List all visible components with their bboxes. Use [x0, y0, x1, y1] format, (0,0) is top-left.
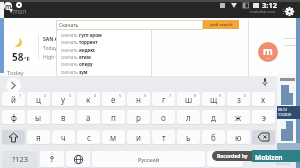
staticText: скачать: [61, 39, 79, 45]
staticText: ы: [35, 112, 42, 123]
button[interactable]: ц: [27, 92, 50, 106]
button[interactable]: ж: [227, 110, 250, 124]
button[interactable]: а: [77, 110, 100, 124]
button[interactable]: м: [102, 130, 125, 144]
button[interactable]: Settings: [285, 7, 294, 16]
button[interactable]: ?123: [2, 151, 38, 167]
button[interactable]: Next: [6, 78, 21, 93]
button[interactable]: Emoji: [40, 151, 64, 167]
button[interactable]: я: [27, 130, 50, 144]
button[interactable]: Voice search: [262, 78, 268, 86]
staticText: 0: [244, 93, 247, 98]
button[interactable]: ь: [177, 130, 200, 144]
staticText: 6: [144, 93, 147, 98]
button[interactable]: п: [102, 110, 125, 124]
staticText: яндекс: [79, 47, 96, 53]
button[interactable]: о: [152, 110, 175, 124]
staticText: web search: [210, 22, 233, 27]
staticText: Mobizen: [276, 161, 291, 166]
button[interactable]: скачать: [61, 38, 147, 45]
staticText: о: [161, 112, 166, 123]
button[interactable]: н: [127, 92, 150, 106]
staticText: ч: [61, 132, 66, 143]
staticText: е: [111, 94, 116, 105]
staticText: оперу: [79, 61, 93, 67]
staticText: н: [136, 94, 141, 105]
staticText: в: [61, 112, 66, 123]
staticText: торрент: [79, 39, 98, 45]
button[interactable]: к: [77, 92, 100, 106]
button[interactable]: щ: [202, 92, 225, 106]
staticText: ц: [36, 94, 41, 105]
staticText: етим: [79, 54, 91, 60]
staticText: 58: [12, 50, 24, 64]
staticText: 7: [169, 93, 172, 98]
staticText: у: [61, 94, 66, 105]
button[interactable]: скачать: [61, 68, 147, 75]
button[interactable]: скачать: [61, 60, 147, 67]
button[interactable]: и: [127, 130, 150, 144]
button[interactable]: т: [152, 130, 175, 144]
button[interactable]: m: [258, 42, 278, 62]
staticText: зум: [79, 69, 88, 75]
staticText: mobidsk.com: [250, 9, 276, 14]
button[interactable]: з: [227, 92, 250, 106]
staticText: 3: [69, 93, 72, 98]
staticText: Today: [43, 45, 57, 52]
button[interactable]: х: [252, 92, 275, 106]
button[interactable]: web search: [203, 20, 239, 29]
button[interactable]: ф: [2, 110, 25, 124]
button[interactable]: Backspace: [252, 130, 275, 144]
staticText: скачать: [61, 61, 79, 67]
button[interactable]: й: [2, 92, 25, 106]
staticText: г: [162, 94, 166, 105]
staticText: 08:12: [278, 107, 287, 112]
button[interactable]: скачать: [61, 46, 147, 53]
staticText: 1: [19, 93, 22, 98]
staticText: гугл хром: [79, 32, 102, 38]
staticText: б: [211, 132, 216, 143]
staticText: з: [237, 94, 241, 105]
button[interactable]: скачать: [61, 31, 147, 38]
staticText: скачать: [61, 69, 79, 75]
button[interactable]: в: [52, 110, 75, 124]
staticText: м: [110, 132, 117, 143]
staticText: 4: [94, 93, 97, 98]
button[interactable]: ш: [177, 92, 200, 106]
button[interactable]: Enter: [207, 151, 243, 167]
staticText: ф: [11, 112, 17, 123]
staticText: 5: [119, 93, 122, 98]
staticText: °F: [24, 55, 30, 63]
button[interactable]: б: [202, 130, 225, 144]
staticText: и: [136, 132, 141, 143]
button[interactable]: скачать: [61, 53, 147, 60]
button[interactable]: с: [77, 130, 100, 144]
staticText: с: [87, 132, 91, 143]
staticText: д: [211, 112, 216, 123]
staticText: скачать: [61, 47, 79, 53]
staticText: т: [162, 132, 166, 143]
button[interactable]: р: [127, 110, 150, 124]
staticText: 2: [44, 93, 47, 98]
staticText: High 6: [43, 54, 59, 61]
button[interactable]: г: [152, 92, 175, 106]
button[interactable]: у: [52, 92, 75, 106]
button[interactable]: Shift: [2, 130, 25, 144]
button[interactable]: ч: [52, 130, 75, 144]
button[interactable]: э: [252, 110, 275, 124]
button[interactable]: ю: [227, 130, 250, 144]
button[interactable]: е: [102, 92, 125, 106]
staticText: 3:12: [262, 0, 277, 10]
staticText: ю: [235, 132, 242, 143]
button[interactable]: [56, 20, 203, 30]
staticText: m: [263, 44, 273, 58]
button[interactable]: Русский: [92, 151, 205, 167]
staticText: msn: [13, 7, 27, 16]
button[interactable]: Change language: [66, 151, 90, 167]
button[interactable]: д: [202, 110, 225, 124]
staticText: Скачать: [59, 22, 79, 29]
button[interactable]: л: [177, 110, 200, 124]
staticText: ь: [186, 132, 191, 143]
button[interactable]: ы: [27, 110, 50, 124]
staticText: Mobizen: [255, 153, 283, 162]
